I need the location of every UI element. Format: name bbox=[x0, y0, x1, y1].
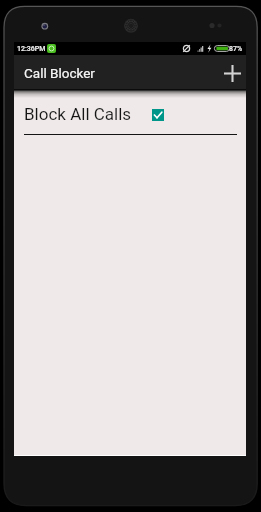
staticText: 87% bbox=[229, 45, 243, 53]
staticText: Block All Calls bbox=[24, 104, 132, 124]
staticText: 12:36PM bbox=[17, 45, 46, 53]
button[interactable]: Block All Calls bbox=[14, 89, 246, 134]
button[interactable]: Add number bbox=[218, 59, 246, 87]
staticText: Call Blocker bbox=[24, 65, 95, 81]
